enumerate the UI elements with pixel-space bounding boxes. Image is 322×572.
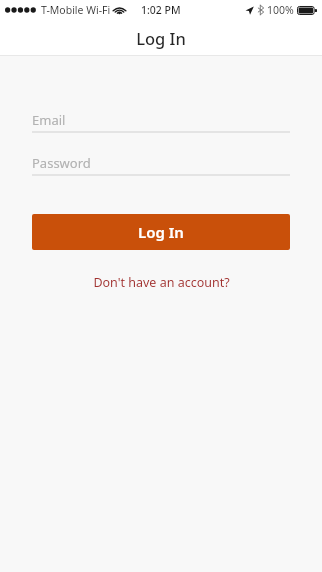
staticText: Log In [136,27,186,49]
button[interactable]: Log In [32,214,290,250]
staticText: Email [32,111,66,129]
staticText: 1:02 PM [141,3,181,17]
staticText: Log In [138,222,184,242]
button[interactable]: Don't have an account? [32,267,290,297]
button[interactable]: Password [32,152,290,176]
staticText: Don't have an account? [93,274,230,291]
staticText: T-Mobile Wi-Fi [41,3,111,17]
staticText: Password [32,154,91,172]
staticText: 100% [267,3,294,17]
button[interactable]: Email [32,109,290,133]
